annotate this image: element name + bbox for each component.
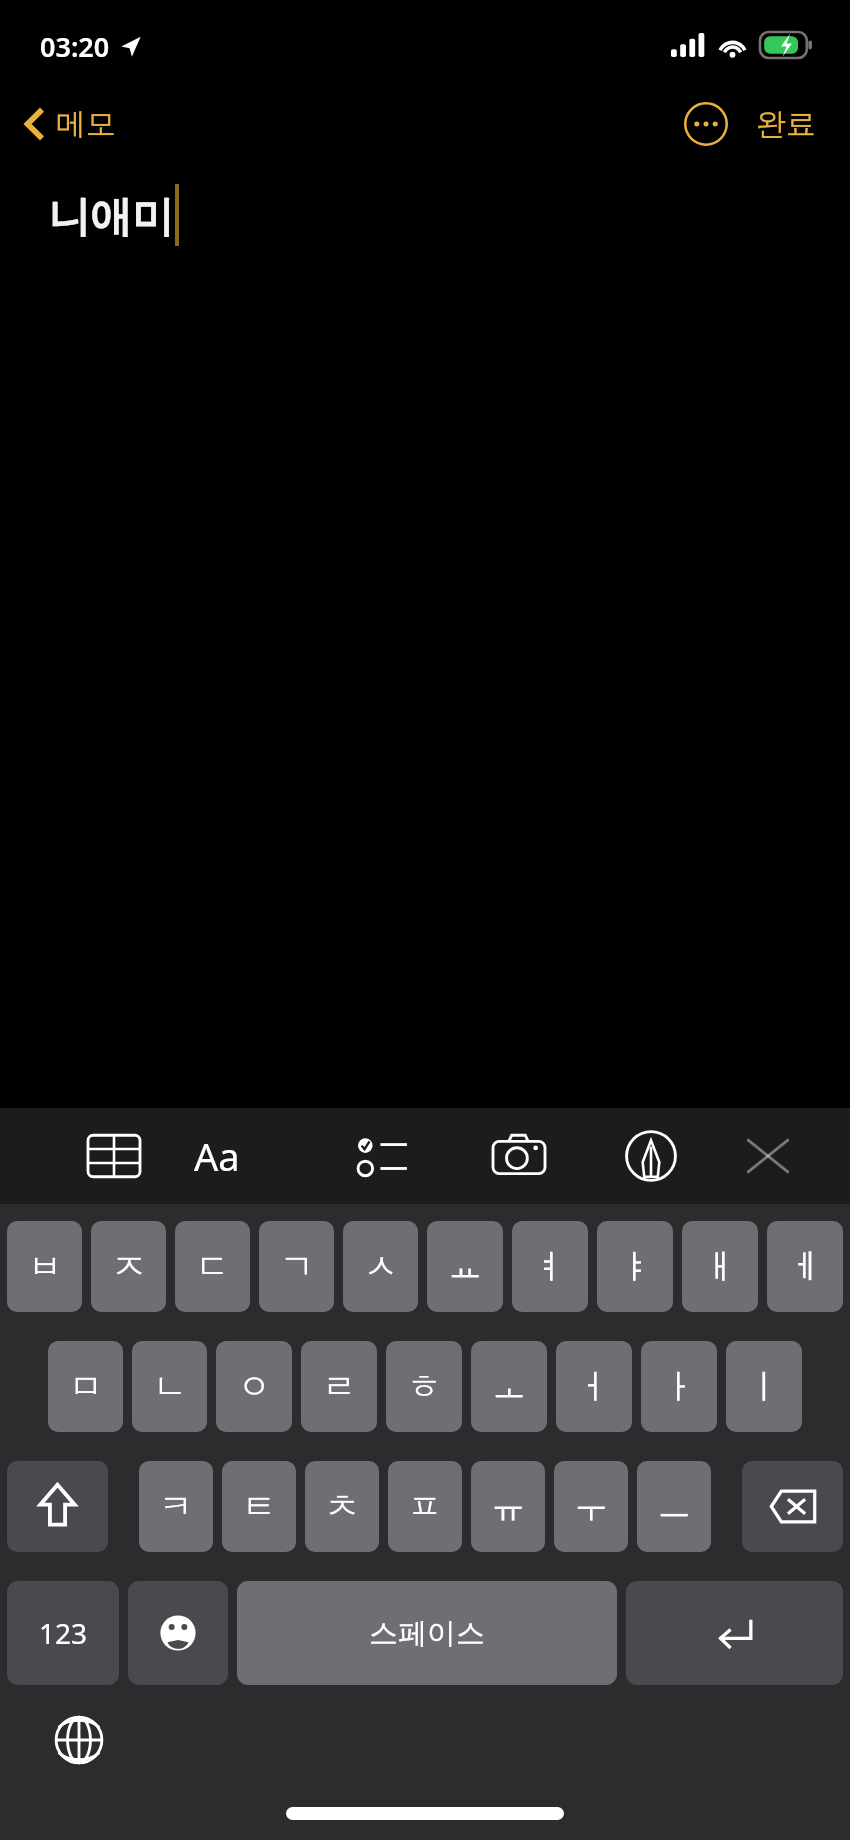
button[interactable]: Emoji bbox=[128, 1581, 228, 1685]
button[interactable]: Markup bbox=[613, 1130, 689, 1182]
staticText: ㅐ bbox=[703, 1245, 737, 1288]
button[interactable]: Camera bbox=[481, 1130, 557, 1182]
button[interactable]: 스페이스 bbox=[237, 1581, 617, 1685]
button[interactable]: ㄴ bbox=[132, 1341, 207, 1432]
button[interactable]: 완료 bbox=[750, 99, 822, 149]
button[interactable]: Table bbox=[76, 1130, 152, 1182]
button[interactable]: ㅐ bbox=[682, 1221, 758, 1312]
staticText: 123 bbox=[39, 1614, 88, 1652]
button[interactable]: ㅂ bbox=[7, 1221, 82, 1312]
button[interactable]: ㅑ bbox=[597, 1221, 673, 1312]
button[interactable]: ㅕ bbox=[512, 1221, 588, 1312]
staticText: 메모 bbox=[56, 105, 116, 143]
button[interactable]: Shift bbox=[7, 1461, 108, 1552]
staticText: ㄹ bbox=[322, 1365, 356, 1408]
button[interactable]: Return bbox=[626, 1581, 843, 1685]
staticText: ㅡ bbox=[657, 1485, 691, 1528]
staticText: ㅜ bbox=[574, 1485, 608, 1528]
button[interactable]: ㅛ bbox=[427, 1221, 503, 1312]
staticText: ㅁ bbox=[69, 1365, 103, 1408]
staticText: ㅋ bbox=[159, 1485, 193, 1528]
staticText: ㅓ bbox=[577, 1365, 611, 1408]
button[interactable]: ㅠ bbox=[471, 1461, 545, 1552]
button[interactable]: ㅗ bbox=[471, 1341, 547, 1432]
button[interactable]: ㅜ bbox=[554, 1461, 628, 1552]
button[interactable]: ㅌ bbox=[222, 1461, 296, 1552]
button[interactable]: Checklist bbox=[345, 1130, 421, 1182]
button[interactable]: ㅏ bbox=[641, 1341, 717, 1432]
staticText: ㅛ bbox=[448, 1245, 482, 1288]
button[interactable]: ㄷ bbox=[175, 1221, 250, 1312]
staticText: 스페이스 bbox=[369, 1615, 485, 1652]
staticText: ㄷ bbox=[196, 1245, 230, 1288]
staticText: ㅎ bbox=[407, 1365, 441, 1408]
staticText: ㅇ bbox=[237, 1365, 271, 1408]
button[interactable]: ㅡ bbox=[637, 1461, 711, 1552]
button[interactable]: Change keyboard bbox=[48, 1709, 110, 1771]
button[interactable]: ㅈ bbox=[91, 1221, 166, 1312]
button[interactable]: ㅇ bbox=[216, 1341, 292, 1432]
button[interactable]: Close keyboard bbox=[730, 1130, 806, 1182]
button[interactable]: ㄹ bbox=[301, 1341, 377, 1432]
staticText: ㄱ bbox=[280, 1245, 314, 1288]
button[interactable]: 123 bbox=[7, 1581, 119, 1685]
staticText: ㅊ bbox=[325, 1485, 359, 1528]
staticText: 니애미 bbox=[48, 191, 174, 244]
staticText: ㅣ bbox=[747, 1365, 781, 1408]
button[interactable]: ㅅ bbox=[343, 1221, 418, 1312]
staticText: ㅔ bbox=[788, 1245, 822, 1288]
button[interactable]: ㅁ bbox=[48, 1341, 123, 1432]
button[interactable]: ㅣ bbox=[726, 1341, 802, 1432]
button[interactable]: ㅊ bbox=[305, 1461, 379, 1552]
staticText: Aa bbox=[194, 1130, 240, 1182]
button[interactable]: ㅍ bbox=[388, 1461, 462, 1552]
button[interactable]: ㅎ bbox=[386, 1341, 462, 1432]
staticText: ㅂ bbox=[28, 1245, 62, 1288]
button[interactable]: More options bbox=[680, 98, 732, 150]
staticText: ㅑ bbox=[618, 1245, 652, 1288]
staticText: 완료 bbox=[756, 105, 816, 143]
staticText: ㅕ bbox=[533, 1245, 567, 1288]
staticText: ㅗ bbox=[492, 1365, 526, 1408]
staticText: ㄴ bbox=[153, 1365, 187, 1408]
staticText: 03:20 bbox=[40, 28, 110, 65]
staticText: ㅏ bbox=[662, 1365, 696, 1408]
staticText: ㅈ bbox=[112, 1245, 146, 1288]
button[interactable]: ㄱ bbox=[259, 1221, 334, 1312]
button[interactable]: 메모 bbox=[16, 99, 124, 149]
button[interactable]: Text format bbox=[182, 1108, 252, 1204]
button[interactable]: Backspace bbox=[742, 1461, 843, 1552]
button[interactable]: ㅔ bbox=[767, 1221, 843, 1312]
staticText: ㅍ bbox=[408, 1485, 442, 1528]
button[interactable]: ㅋ bbox=[139, 1461, 213, 1552]
staticText: ㅅ bbox=[364, 1245, 398, 1288]
staticText: ㅌ bbox=[242, 1485, 276, 1528]
button[interactable]: ㅓ bbox=[556, 1341, 632, 1432]
staticText: ㅠ bbox=[491, 1485, 525, 1528]
